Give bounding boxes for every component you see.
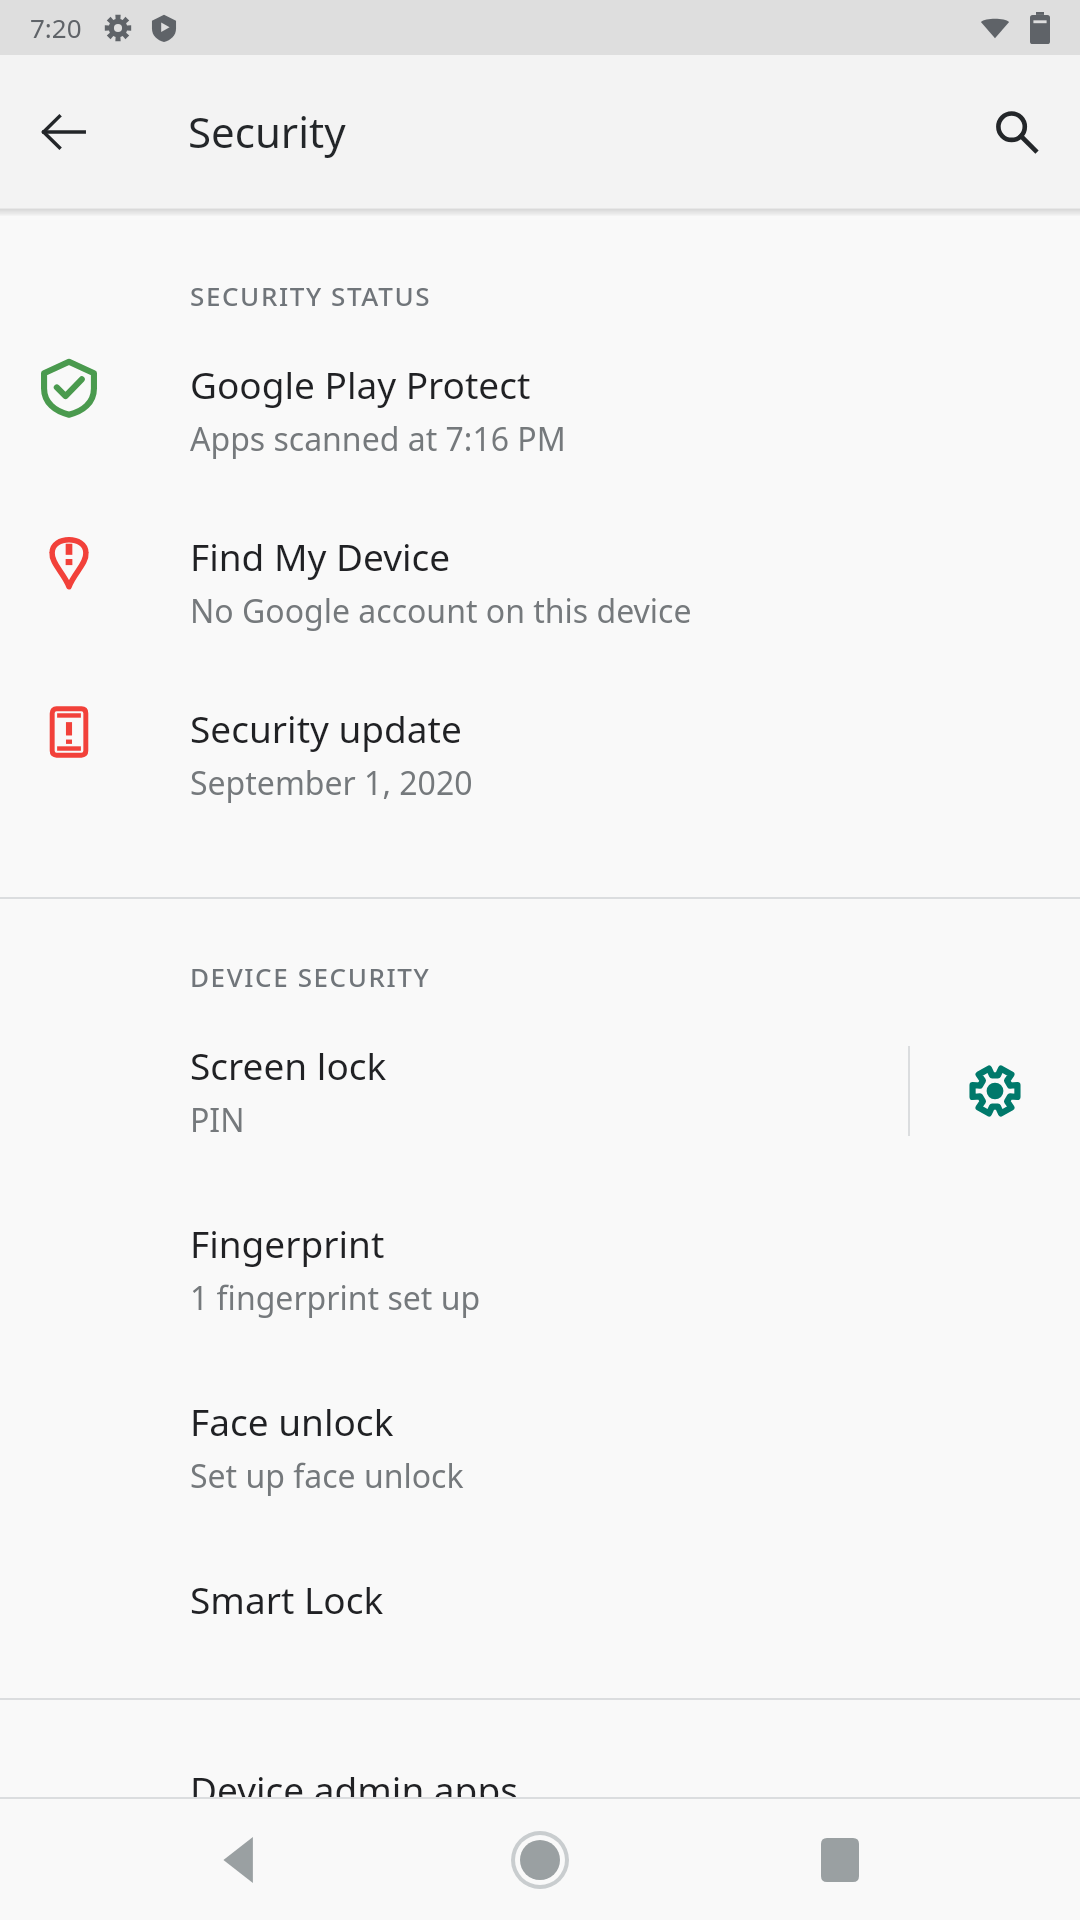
staticText: Face unlock xyxy=(190,1396,394,1446)
button[interactable]: Home xyxy=(480,1800,600,1920)
staticText: Set up face unlock xyxy=(190,1454,464,1498)
button[interactable]: Back xyxy=(180,1800,300,1920)
staticText: No active apps xyxy=(190,1822,411,1866)
button[interactable]: Face unlock xyxy=(0,1392,1080,1502)
button[interactable]: Search xyxy=(978,94,1054,170)
staticText: PIN xyxy=(190,1098,245,1142)
staticText: Google Play Protect xyxy=(190,359,531,409)
staticText: Apps scanned at 7:16 PM xyxy=(190,417,566,461)
button[interactable]: Smart Lock xyxy=(0,1570,1080,1628)
button[interactable]: Screen lock settings xyxy=(910,1036,1080,1146)
staticText: SECURITY STATUS xyxy=(190,278,432,313)
button[interactable]: Find My Device xyxy=(0,525,1080,639)
button[interactable]: Screen lock xyxy=(0,1036,908,1146)
staticText: Find My Device xyxy=(190,531,451,581)
staticText: No Google account on this device xyxy=(190,589,692,633)
staticText: September 1, 2020 xyxy=(190,761,473,805)
staticText: Security update xyxy=(190,703,462,753)
button[interactable]: Device admin apps xyxy=(0,1760,1080,1870)
staticText: Device admin apps xyxy=(190,1764,518,1814)
button[interactable]: Back xyxy=(26,94,102,170)
staticText: Screen lock xyxy=(190,1040,387,1090)
button[interactable]: Google Play Protect xyxy=(0,353,1080,467)
staticText: Fingerprint xyxy=(190,1218,385,1268)
staticText: Smart Lock xyxy=(190,1574,384,1624)
staticText: DEVICE SECURITY xyxy=(190,959,431,994)
button[interactable]: Recent apps xyxy=(780,1800,900,1920)
staticText: 7:20 xyxy=(30,10,82,45)
button[interactable]: Fingerprint xyxy=(0,1214,1080,1324)
staticText: 1 fingerprint set up xyxy=(190,1276,481,1320)
button[interactable]: Security update xyxy=(0,697,1080,811)
staticText: Security xyxy=(188,103,346,160)
